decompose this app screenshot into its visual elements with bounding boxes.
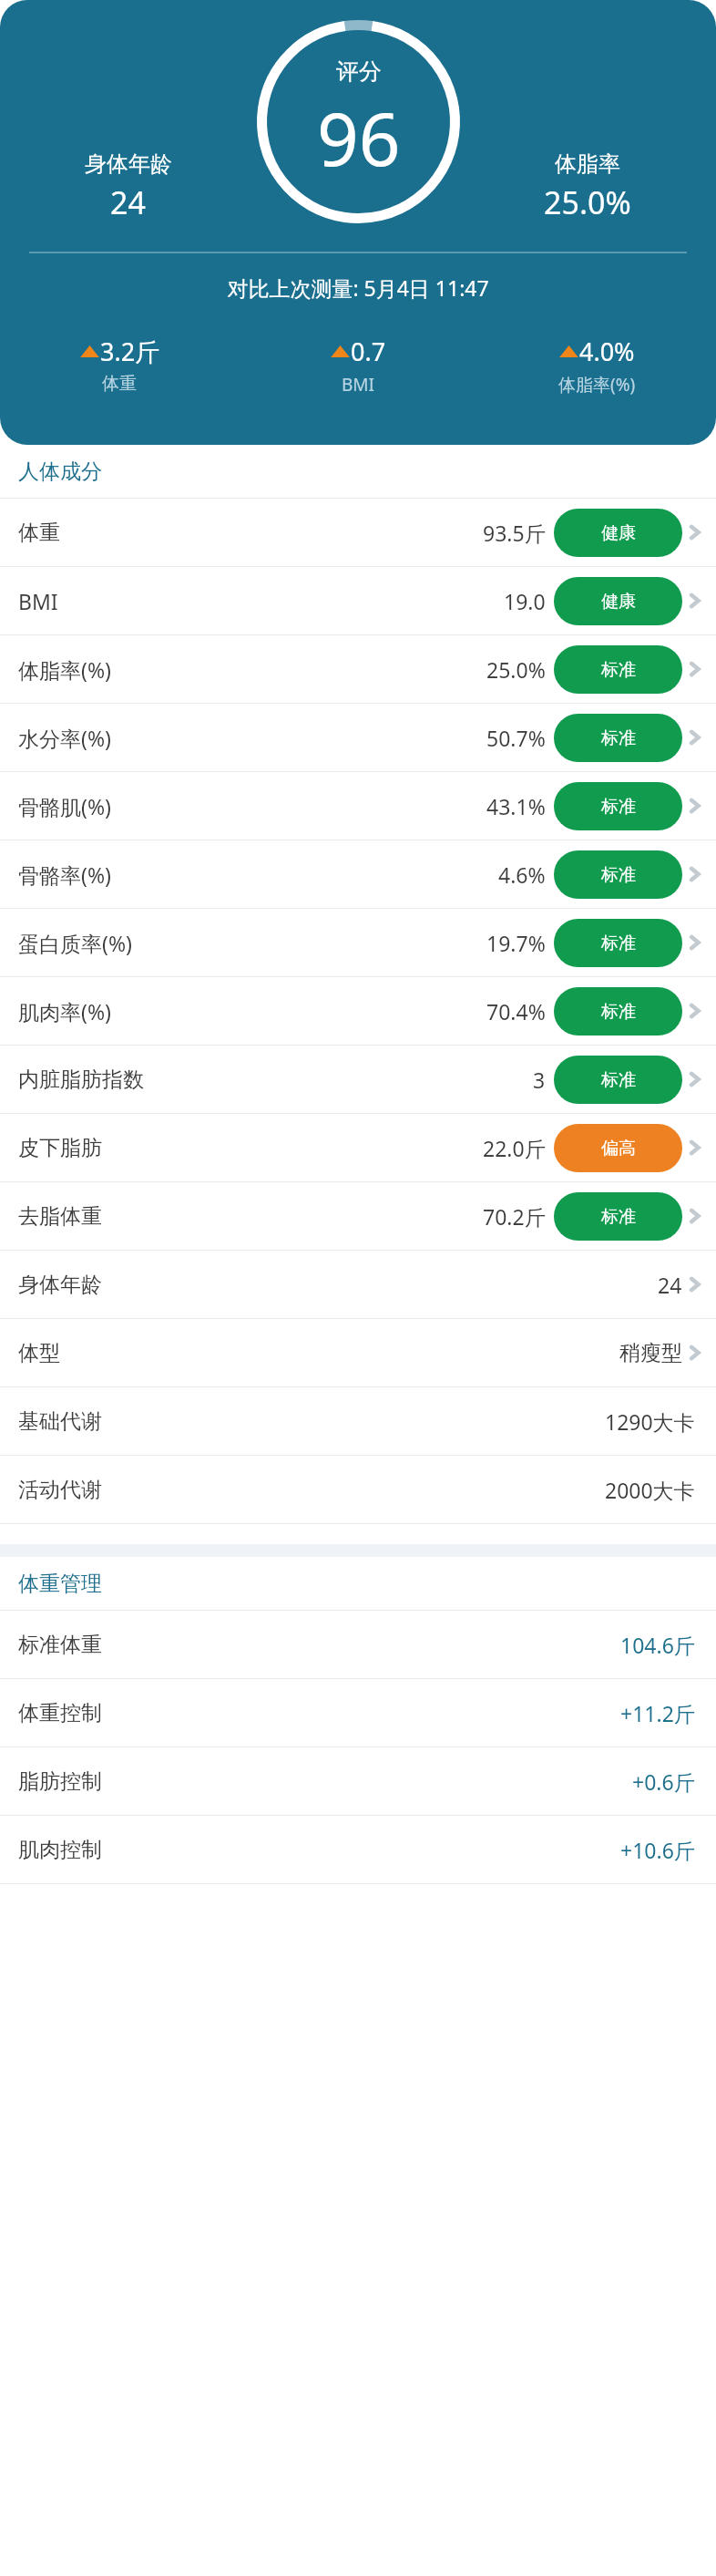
staticText: 标准 [601, 1069, 636, 1091]
staticText: BMI [342, 373, 375, 397]
staticText: 健康 [601, 522, 636, 544]
staticText: BMI [18, 587, 58, 615]
staticText: 活动代谢 [18, 1477, 102, 1503]
staticText: 身体年龄 [85, 150, 172, 178]
button[interactable]: BMI [0, 567, 716, 634]
button[interactable]: 身体年龄 [0, 1251, 716, 1318]
staticText: 体脂率(%) [558, 373, 636, 397]
staticText: 偏高 [601, 1138, 636, 1159]
staticText: 标准 [601, 1001, 636, 1023]
staticText: 标准 [601, 727, 636, 749]
button[interactable]: 内脏脂肪指数 [0, 1046, 716, 1113]
staticText: 43.1% [486, 792, 546, 820]
button[interactable]: 体重控制 [0, 1679, 716, 1747]
button[interactable]: 蛋白质率(%) [0, 909, 716, 976]
staticText: 标准体重 [18, 1632, 102, 1658]
staticText: 标准 [601, 1206, 636, 1228]
button[interactable]: 标准体重 [0, 1611, 716, 1678]
staticText: 24 [658, 1271, 682, 1299]
staticText: 96 [317, 88, 401, 187]
staticText: 标准 [601, 659, 636, 681]
staticText: 体重管理 [18, 1571, 102, 1597]
staticText: 104.6斤 [620, 1631, 695, 1659]
button[interactable]: 基础代谢 [0, 1387, 716, 1455]
staticText: 评分 [336, 57, 382, 86]
staticText: 对比上次测量: 5月4日 11:47 [0, 273, 716, 302]
button[interactable]: 活动代谢 [0, 1456, 716, 1523]
staticText: 2000大卡 [605, 1476, 695, 1504]
staticText: 24 [110, 181, 146, 223]
staticText: +0.6斤 [632, 1767, 695, 1796]
staticText: 25.0% [486, 655, 546, 684]
button[interactable]: 水分率(%) [0, 704, 716, 771]
button[interactable]: 体脂率(%) [0, 635, 716, 703]
staticText: 蛋白质率(%) [18, 929, 132, 957]
button[interactable]: 皮下脂肪 [0, 1114, 716, 1181]
staticText: 体脂率(%) [18, 655, 111, 684]
staticText: 内脏脂肪指数 [18, 1066, 144, 1093]
button[interactable]: 体型 [0, 1319, 716, 1386]
staticText: 水分率(%) [18, 724, 111, 752]
staticText: 骨骼肌(%) [18, 792, 111, 820]
staticText: 身体年龄 [18, 1272, 102, 1298]
button[interactable]: 去脂体重 [0, 1182, 716, 1250]
staticText: 体脂率 [555, 150, 620, 178]
staticText: 稍瘦型 [619, 1340, 682, 1366]
staticText: 体重 [18, 520, 60, 546]
staticText: +10.6斤 [620, 1836, 695, 1864]
staticText: 体重控制 [18, 1700, 102, 1726]
staticText: 4.0% [579, 335, 635, 368]
staticText: 标准 [601, 796, 636, 818]
staticText: 50.7% [486, 724, 546, 752]
staticText: 体型 [18, 1340, 60, 1366]
staticText: 基础代谢 [18, 1408, 102, 1435]
staticText: 肌肉率(%) [18, 997, 111, 1025]
staticText: 骨骼率(%) [18, 860, 111, 889]
staticText: 人体成分 [18, 459, 102, 485]
button[interactable]: 骨骼肌(%) [0, 772, 716, 840]
button[interactable]: 骨骼率(%) [0, 840, 716, 908]
staticText: 19.7% [486, 929, 546, 957]
staticText: 0.7 [351, 335, 386, 368]
staticText: 3.2斤 [100, 335, 160, 368]
button[interactable]: 体重 [0, 499, 716, 566]
staticText: 22.0斤 [483, 1134, 546, 1162]
staticText: 1290大卡 [605, 1407, 695, 1436]
staticText: +11.2斤 [620, 1699, 695, 1727]
staticText: 4.6% [498, 860, 546, 889]
button[interactable]: 肌肉控制 [0, 1816, 716, 1883]
staticText: 标准 [601, 933, 636, 954]
staticText: 体重 [102, 373, 137, 395]
staticText: 70.2斤 [483, 1202, 546, 1231]
button[interactable]: 脂肪控制 [0, 1747, 716, 1815]
staticText: 19.0 [504, 587, 546, 615]
staticText: 70.4% [486, 997, 546, 1025]
staticText: 93.5斤 [483, 519, 546, 547]
staticText: 标准 [601, 864, 636, 886]
staticText: 3 [533, 1066, 546, 1094]
staticText: 25.0% [544, 181, 631, 223]
staticText: 皮下脂肪 [18, 1135, 102, 1161]
staticText: 肌肉控制 [18, 1837, 102, 1863]
staticText: 脂肪控制 [18, 1768, 102, 1795]
staticText: 健康 [601, 591, 636, 613]
staticText: 去脂体重 [18, 1203, 102, 1230]
button[interactable]: 肌肉率(%) [0, 977, 716, 1045]
